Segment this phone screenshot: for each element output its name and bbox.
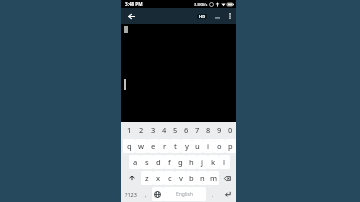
staticText: q xyxy=(127,141,132,151)
button[interactable]: Enter xyxy=(219,186,236,202)
staticText: v xyxy=(179,173,183,183)
button[interactable]: ?123 xyxy=(123,186,139,202)
staticText: , xyxy=(145,191,147,198)
staticText: 0 xyxy=(228,125,233,135)
staticText: s xyxy=(145,157,149,167)
staticText: u xyxy=(195,141,200,151)
staticText: n xyxy=(200,173,205,183)
button[interactable]: 7 xyxy=(192,122,203,138)
button[interactable]: 4 xyxy=(159,122,170,138)
staticText: . xyxy=(212,191,214,198)
staticText: x xyxy=(156,173,161,183)
button[interactable]: n xyxy=(197,171,208,185)
button[interactable]: Video quality xyxy=(195,11,208,21)
staticText: a xyxy=(133,157,138,167)
button[interactable]: p xyxy=(225,139,236,153)
button[interactable]: v xyxy=(175,171,186,185)
staticText: l xyxy=(223,157,226,167)
button[interactable]: t xyxy=(170,139,181,153)
staticText: p xyxy=(228,141,233,151)
button[interactable]: 3 xyxy=(147,122,159,138)
button[interactable]: j xyxy=(197,155,208,169)
staticText: e xyxy=(151,141,156,151)
button[interactable]: y xyxy=(181,139,192,153)
staticText: 4 xyxy=(162,125,167,135)
button[interactable]: a xyxy=(129,155,141,169)
staticText: 3 xyxy=(151,125,156,135)
staticText: i xyxy=(207,141,210,151)
staticText: 2 xyxy=(139,125,144,135)
button[interactable]: b xyxy=(186,171,197,185)
button[interactable]: u xyxy=(192,139,203,153)
button[interactable]: x xyxy=(153,171,164,185)
staticText: y xyxy=(185,141,189,151)
staticText: 9 xyxy=(217,125,222,135)
button[interactable]: , xyxy=(139,186,152,202)
staticText: 5 xyxy=(173,125,178,135)
button[interactable]: 1 xyxy=(123,122,135,138)
button[interactable]: 6 xyxy=(181,122,192,138)
button[interactable]: o xyxy=(214,139,225,153)
button[interactable]: 9 xyxy=(214,122,225,138)
button[interactable]: 2 xyxy=(135,122,147,138)
staticText: c xyxy=(168,173,172,183)
button[interactable]: f xyxy=(164,155,175,169)
button[interactable]: More options xyxy=(224,8,235,24)
button[interactable]: s xyxy=(141,155,153,169)
staticText: 8 xyxy=(206,125,211,135)
button[interactable]: z xyxy=(141,171,153,185)
button[interactable]: Back xyxy=(124,8,139,24)
staticText: 7 xyxy=(195,125,200,135)
staticText: English xyxy=(176,191,194,198)
button[interactable]: h xyxy=(186,155,197,169)
staticText: g xyxy=(178,157,183,167)
button[interactable]: m xyxy=(208,171,219,185)
button[interactable]: English xyxy=(163,187,206,201)
staticText: t xyxy=(174,141,177,151)
button[interactable]: 8 xyxy=(203,122,214,138)
staticText: b xyxy=(189,173,194,183)
button[interactable]: Shift xyxy=(123,170,141,186)
button[interactable]: k xyxy=(208,155,219,169)
button[interactable]: . xyxy=(206,186,219,202)
staticText: h xyxy=(189,157,194,167)
button[interactable]: Minimise xyxy=(210,8,224,24)
button[interactable]: 5 xyxy=(170,122,181,138)
button[interactable]: d xyxy=(153,155,164,169)
staticText: 6 xyxy=(184,125,189,135)
button[interactable]: Change keyboard xyxy=(152,187,163,201)
button[interactable]: Backspace xyxy=(219,170,236,186)
button[interactable]: e xyxy=(147,139,159,153)
staticText: 3:48 PM xyxy=(125,1,143,7)
staticText: k xyxy=(211,157,216,167)
staticText: d xyxy=(156,157,161,167)
button[interactable]: r xyxy=(159,139,170,153)
button[interactable]: g xyxy=(175,155,186,169)
staticText: w xyxy=(138,141,145,151)
staticText: j xyxy=(201,157,204,167)
button[interactable]: q xyxy=(123,139,135,153)
staticText: f xyxy=(168,157,171,167)
staticText: 1 xyxy=(127,125,132,135)
button[interactable]: w xyxy=(135,139,147,153)
button[interactable]: c xyxy=(164,171,175,185)
staticText: o xyxy=(217,141,222,151)
staticText: z xyxy=(145,173,149,183)
staticText: 3.3KB/s xyxy=(194,2,208,7)
staticText: ?123 xyxy=(125,191,137,198)
staticText: m xyxy=(210,173,218,183)
staticText: HD xyxy=(199,14,206,19)
button[interactable]: i xyxy=(203,139,214,153)
staticText: r xyxy=(163,141,167,151)
button[interactable]: l xyxy=(219,155,230,169)
button[interactable]: 0 xyxy=(225,122,236,138)
